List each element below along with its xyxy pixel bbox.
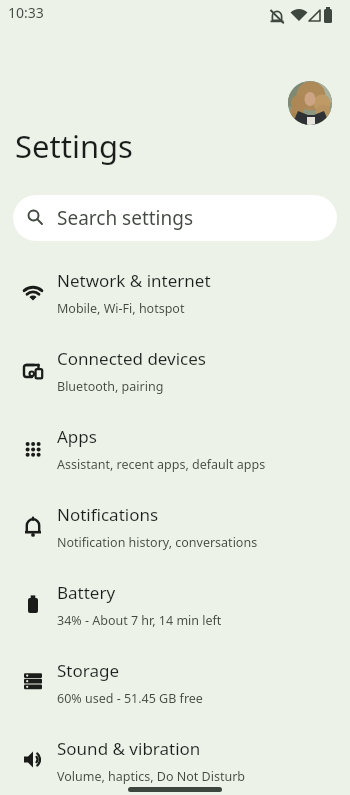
- staticText: Mobile, Wi-Fi, hotspot: [57, 300, 185, 317]
- button[interactable]: Sound & vibration: [0, 722, 350, 795]
- staticText: Connected devices: [57, 347, 207, 370]
- staticText: 34% - About 7 hr, 14 min left: [57, 612, 222, 629]
- staticText: Notification history, conversations: [57, 534, 258, 551]
- staticText: Sound & vibration: [57, 737, 201, 760]
- button[interactable]: Search settings: [13, 195, 337, 241]
- staticText: 60% used - 51.45 GB free: [57, 690, 203, 707]
- button[interactable]: Storage: [0, 644, 350, 722]
- staticText: Assistant, recent apps, default apps: [57, 456, 266, 473]
- staticText: Network & internet: [57, 269, 211, 292]
- staticText: Settings: [15, 125, 133, 167]
- staticText: Storage: [57, 659, 120, 682]
- staticText: Battery: [57, 581, 116, 604]
- staticText: Bluetooth, pairing: [57, 378, 164, 395]
- button[interactable]: Network & internet: [0, 254, 350, 332]
- button[interactable]: Connected devices: [0, 332, 350, 410]
- staticText: Apps: [57, 425, 97, 448]
- button[interactable]: Battery: [0, 566, 350, 644]
- button[interactable]: [288, 81, 332, 125]
- staticText: Volume, haptics, Do Not Disturb: [57, 768, 246, 785]
- button[interactable]: Notifications: [0, 488, 350, 566]
- staticText: Search settings: [57, 205, 194, 231]
- button[interactable]: Apps: [0, 410, 350, 488]
- staticText: 10:33: [8, 3, 44, 22]
- staticText: Notifications: [57, 503, 159, 526]
